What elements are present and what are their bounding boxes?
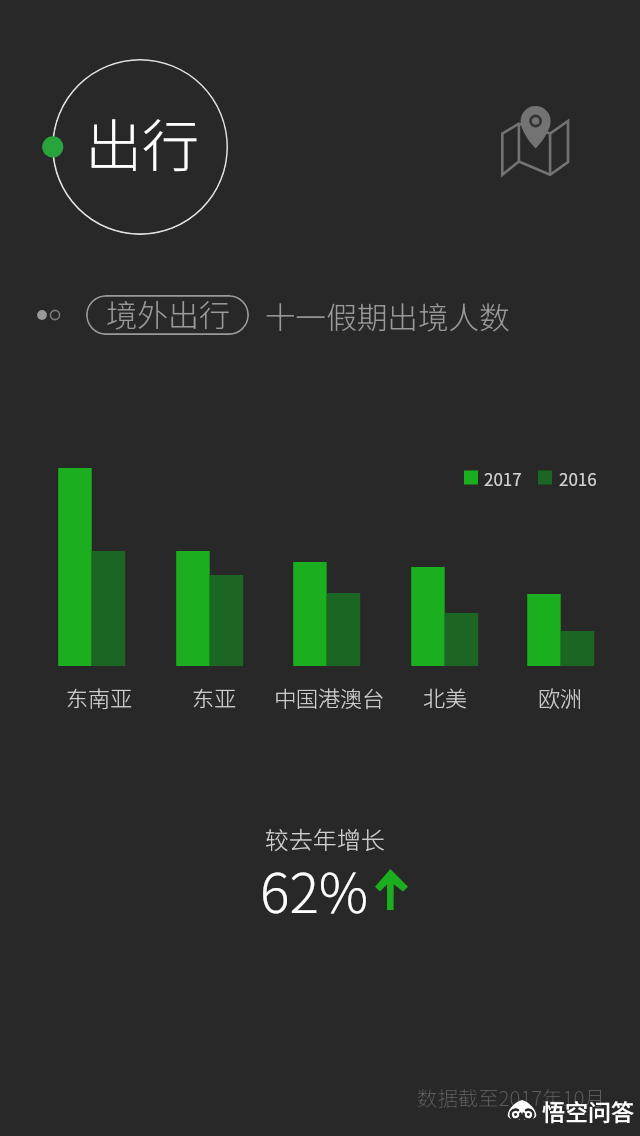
button[interactable]: 境外出行 bbox=[86, 295, 249, 335]
staticText: 东南亚 bbox=[9, 681, 189, 713]
staticText: 十一假期出境人数 bbox=[265, 294, 510, 336]
staticText: 出行 bbox=[85, 101, 199, 184]
staticText: 较去年增长 bbox=[265, 821, 385, 856]
staticText: 东亚 bbox=[124, 681, 304, 713]
staticText: 中国港澳台 bbox=[239, 681, 419, 713]
button[interactable]: Page indicator bbox=[35, 294, 63, 336]
button[interactable]: 出行 bbox=[52, 59, 228, 235]
staticText: 欧洲 bbox=[470, 681, 640, 713]
staticText: 悟空问答 bbox=[542, 1094, 634, 1127]
button[interactable]: Map bbox=[489, 95, 591, 197]
staticText: 62% bbox=[260, 849, 369, 929]
staticText: 2016 bbox=[559, 466, 597, 491]
staticText: 北美 bbox=[355, 681, 535, 713]
button[interactable]: 悟空问答 bbox=[507, 1094, 634, 1127]
staticText: 境外出行 bbox=[106, 295, 230, 331]
staticText: 2017 bbox=[484, 466, 522, 491]
staticText: 数据截至2017年10月 bbox=[417, 1082, 605, 1112]
